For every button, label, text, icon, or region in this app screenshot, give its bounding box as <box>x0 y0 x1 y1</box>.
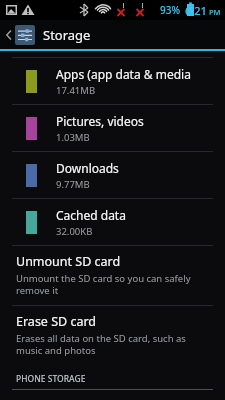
button[interactable]: Unmount SD card <box>0 246 225 305</box>
staticText: 32.00KB <box>56 225 93 238</box>
staticText: 17.41MB <box>56 84 96 97</box>
staticText: PHONE STORAGE <box>16 373 86 385</box>
staticText: Pictures, videos <box>56 113 144 129</box>
staticText: 1.03MB <box>56 131 90 144</box>
staticText: PM <box>209 7 221 17</box>
button[interactable]: Cached data <box>0 199 225 245</box>
staticText: Apps (app data & media content) <box>56 66 225 82</box>
button[interactable]: Downloads <box>0 152 225 198</box>
staticText: Unmount the SD card so you can safely re… <box>16 272 203 297</box>
button[interactable]: Pictures, videos <box>0 105 225 151</box>
staticText: Storage <box>43 26 91 44</box>
staticText: 6:21 <box>185 3 207 18</box>
staticText: Erases all data on the SD card, such as … <box>16 332 203 357</box>
staticText: Downloads <box>56 160 119 176</box>
staticText: Cached data <box>56 207 126 223</box>
staticText: 93% <box>160 3 180 17</box>
staticText: Unmount SD card <box>16 253 121 270</box>
button[interactable]: Apps (app data & media content) <box>0 58 225 104</box>
button[interactable]: Erase SD card <box>0 306 225 365</box>
staticText: 9.77MB <box>56 178 90 191</box>
button[interactable]: Back to Settings <box>0 20 225 49</box>
staticText: Erase SD card <box>16 313 97 330</box>
